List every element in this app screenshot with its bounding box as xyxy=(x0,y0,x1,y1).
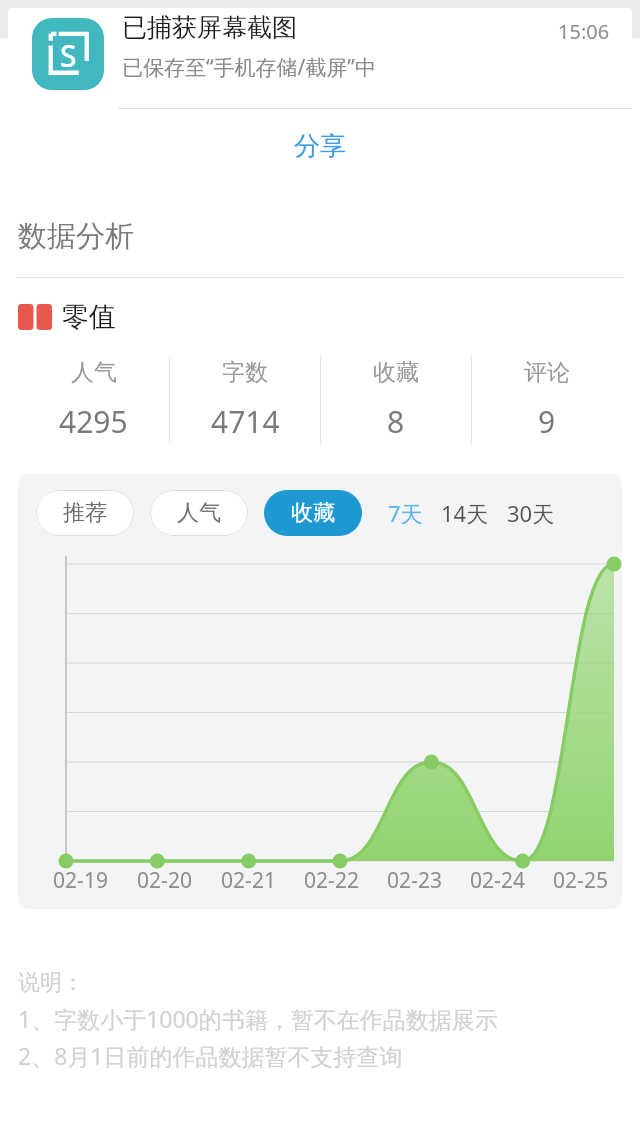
staticText: 人气 xyxy=(71,358,117,387)
staticText: 02-20 xyxy=(137,866,192,895)
staticText: 收藏 xyxy=(373,358,419,387)
staticText: 4295 xyxy=(59,401,128,442)
staticText: 零值 xyxy=(62,300,116,334)
button[interactable]: 14天 xyxy=(439,496,491,530)
staticText: 字数 xyxy=(222,358,268,387)
button[interactable]: 推荐 xyxy=(36,490,134,536)
staticText: 02-25 xyxy=(553,866,608,895)
staticText: 30天 xyxy=(507,498,555,528)
staticText: 15:06 xyxy=(558,18,610,45)
staticText: 评论 xyxy=(524,358,570,387)
staticText: 人气 xyxy=(177,499,221,527)
staticText: 02-23 xyxy=(387,866,442,895)
staticText: 2、8月1日前的作品数据暂不支持查询 xyxy=(18,1040,403,1071)
staticText: 02-21 xyxy=(221,866,276,895)
staticText: 分享 xyxy=(294,130,346,163)
staticText: 推荐 xyxy=(63,499,107,527)
button[interactable]: 7天 xyxy=(386,496,425,530)
button[interactable]: 字数 xyxy=(170,358,320,442)
staticText: 8 xyxy=(387,401,405,442)
button[interactable]: 人气 xyxy=(18,358,169,442)
staticText: 说明： xyxy=(18,969,84,997)
staticText: 已捕获屏幕截图 xyxy=(122,12,297,43)
staticText: S xyxy=(60,35,77,76)
button[interactable]: 收藏 xyxy=(264,490,362,536)
staticText: 1、字数小于1000的书籍，暂不在作品数据展示 xyxy=(18,1003,498,1034)
staticText: 数据分析 xyxy=(18,218,134,255)
staticText: 02-19 xyxy=(53,866,108,895)
button[interactable]: 评论 xyxy=(472,358,622,442)
staticText: 已保存至“手机存储/截屏”中 xyxy=(122,53,376,82)
button[interactable]: 30天 xyxy=(505,496,557,530)
staticText: 9 xyxy=(538,401,556,442)
button[interactable]: 分享 xyxy=(8,109,632,183)
staticText: 02-22 xyxy=(304,866,359,895)
button[interactable]: 人气 xyxy=(150,490,248,536)
staticText: 02-24 xyxy=(470,866,525,895)
other: Screenshot app icon xyxy=(32,18,104,90)
staticText: 7天 xyxy=(388,498,423,528)
staticText: 14天 xyxy=(441,498,489,528)
staticText: 4714 xyxy=(211,401,280,442)
staticText: 收藏 xyxy=(291,499,335,527)
button[interactable]: 收藏 xyxy=(321,358,471,442)
